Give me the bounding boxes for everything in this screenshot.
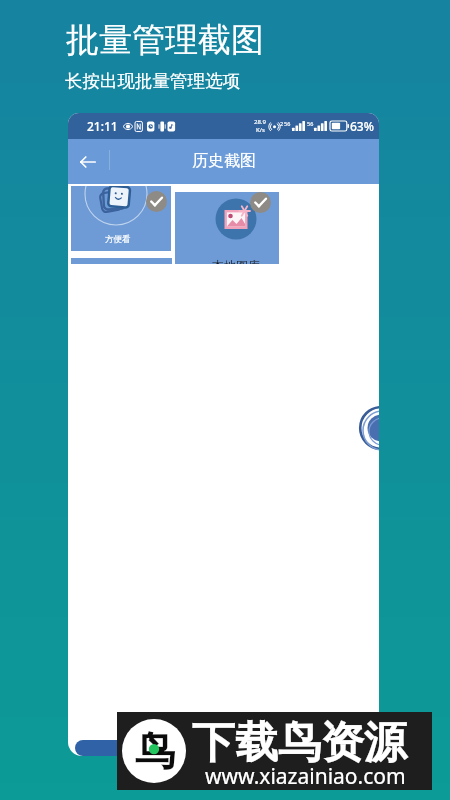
staticText: 21:11	[87, 118, 118, 134]
button[interactable]: Selected	[250, 192, 271, 213]
staticText: 63%	[350, 118, 374, 134]
staticText: 下载鸟资源	[192, 716, 407, 770]
button[interactable]: 方便看	[71, 186, 171, 251]
staticText: 56	[284, 120, 291, 127]
staticText: 历史截图	[192, 151, 256, 171]
staticText: www.xiazainiao.com	[205, 762, 406, 791]
button[interactable]: Back	[71, 145, 105, 179]
staticText: 本地图库	[212, 258, 260, 264]
button[interactable]: Selected	[146, 191, 167, 212]
button[interactable]: 本地图库	[175, 192, 279, 264]
staticText: 28.9	[254, 118, 266, 126]
button[interactable]: Batch action	[75, 740, 139, 756]
staticText: 批量管理截图	[66, 19, 264, 61]
staticText: 2	[280, 120, 284, 127]
staticText: 鸟	[135, 726, 175, 776]
staticText: 56	[307, 120, 314, 127]
staticText: 长按出现批量管理选项	[65, 70, 240, 92]
staticText: 方便看	[105, 234, 131, 245]
staticText: K/s	[256, 126, 265, 134]
